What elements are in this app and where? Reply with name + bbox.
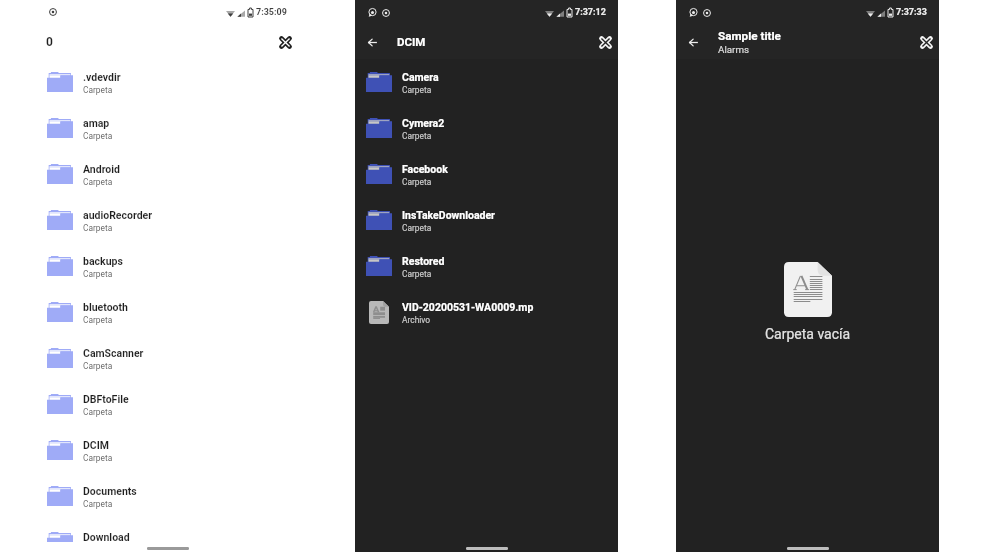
button[interactable]: Documents: [36, 473, 299, 519]
staticText: 7:35:09: [256, 7, 287, 18]
staticText: Camera: [402, 71, 439, 83]
button[interactable]: Close: [273, 30, 297, 54]
staticText: .vdevdir: [83, 71, 121, 83]
staticText: Carpeta: [83, 131, 113, 141]
button[interactable]: DBFtoFile: [36, 381, 299, 427]
staticText: Carpeta vacía: [765, 326, 851, 342]
staticText: Carpeta: [83, 223, 113, 233]
staticText: Android: [83, 163, 120, 175]
staticText: backups: [83, 255, 123, 267]
staticText: Restored: [402, 255, 445, 267]
staticText: InsTakeDownloader: [402, 209, 495, 221]
staticText: Carpeta: [402, 131, 432, 141]
staticText: Carpeta: [83, 269, 113, 279]
staticText: Carpeta: [83, 499, 113, 509]
staticText: DCIM: [397, 35, 426, 48]
staticText: Archivo: [402, 315, 431, 325]
staticText: Carpeta: [83, 85, 113, 95]
button[interactable]: VID-20200531-WA0009.mp: [355, 289, 618, 335]
button[interactable]: backups: [36, 243, 299, 289]
button[interactable]: amap: [36, 105, 299, 151]
staticText: Carpeta: [402, 269, 432, 279]
staticText: Alarms: [718, 44, 750, 55]
button[interactable]: .vdevdir: [36, 59, 299, 105]
staticText: Facebook: [402, 163, 448, 175]
button[interactable]: DCIM: [36, 427, 299, 473]
staticText: Carpeta: [83, 177, 113, 187]
button[interactable]: Close: [914, 30, 938, 54]
button[interactable]: Camera: [355, 59, 618, 105]
button[interactable]: CamScanner: [36, 335, 299, 381]
staticText: 7:37:12: [575, 7, 606, 18]
button[interactable]: Android: [36, 151, 299, 197]
staticText: Carpeta: [402, 177, 432, 187]
button[interactable]: Back: [681, 30, 705, 54]
staticText: audioRecorder: [83, 209, 153, 221]
button[interactable]: audioRecorder: [36, 197, 299, 243]
button[interactable]: bluetooth: [36, 289, 299, 335]
staticText: Sample title: [718, 29, 781, 43]
button[interactable]: Restored: [355, 243, 618, 289]
button[interactable]: InsTakeDownloader: [355, 197, 618, 243]
staticText: VID-20200531-WA0009.mp: [402, 301, 534, 313]
staticText: 0: [46, 35, 53, 49]
staticText: CamScanner: [83, 347, 144, 359]
button[interactable]: Download: [36, 519, 299, 552]
staticText: amap: [83, 117, 110, 129]
staticText: Documents: [83, 485, 137, 497]
staticText: Carpeta: [402, 223, 432, 233]
staticText: bluetooth: [83, 301, 128, 313]
button[interactable]: Back: [360, 30, 384, 54]
staticText: Carpeta: [83, 453, 113, 463]
button[interactable]: Cymera2: [355, 105, 618, 151]
staticText: Cymera2: [402, 117, 445, 129]
staticText: Download: [83, 531, 130, 543]
button[interactable]: Facebook: [355, 151, 618, 197]
staticText: Carpeta: [83, 407, 113, 417]
staticText: Carpeta: [83, 315, 113, 325]
staticText: Carpeta: [83, 361, 113, 371]
staticText: DCIM: [83, 439, 109, 451]
button[interactable]: Close: [593, 30, 617, 54]
staticText: DBFtoFile: [83, 393, 129, 405]
staticText: Carpeta: [402, 85, 432, 95]
staticText: 7:37:33: [896, 7, 927, 18]
